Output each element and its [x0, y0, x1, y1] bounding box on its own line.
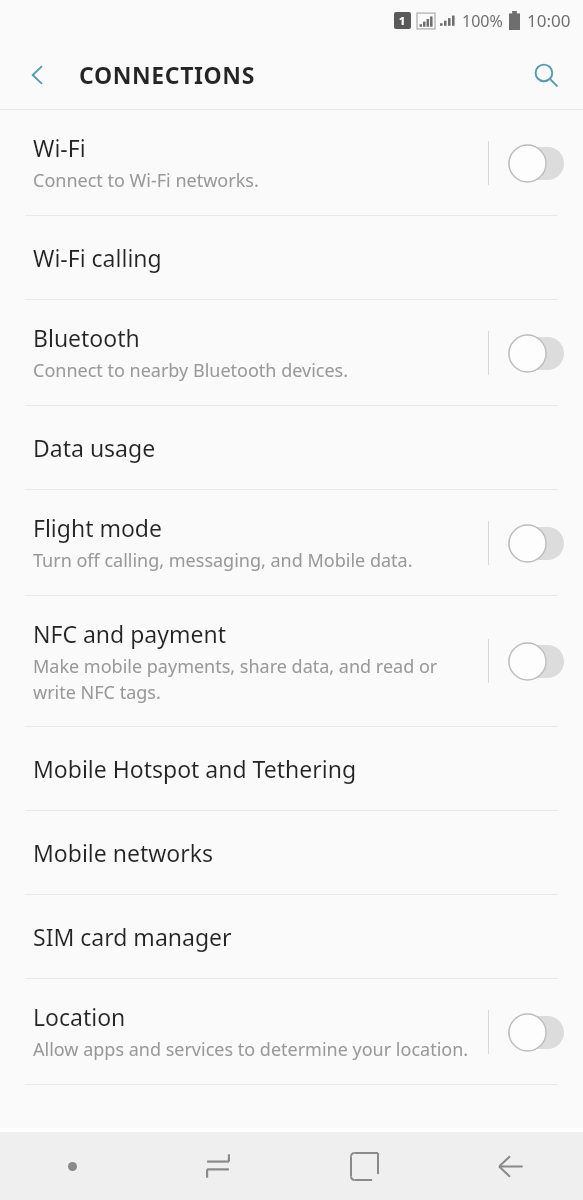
button[interactable]: Toggle — [508, 333, 564, 373]
staticText: Flight mode — [33, 512, 162, 543]
button[interactable]: Home — [291, 1132, 437, 1200]
staticText: Allow apps and services to determine you… — [33, 1037, 469, 1062]
button[interactable]: Search — [522, 51, 570, 99]
staticText: SIM card manager — [33, 921, 232, 952]
staticText: 10:00 — [527, 9, 571, 32]
staticText: Data usage — [33, 432, 156, 463]
button[interactable]: Toggle — [508, 1012, 564, 1052]
button[interactable]: Back — [14, 51, 62, 99]
button[interactable]: Mobile Hotspot and Tethering — [0, 727, 583, 810]
staticText: Mobile Hotspot and Tethering — [33, 753, 357, 784]
staticText: NFC and payment — [33, 618, 226, 649]
staticText: Mobile networks — [33, 837, 214, 868]
button[interactable]: Wi-Fi calling — [0, 216, 583, 299]
button[interactable]: Toggle — [508, 641, 564, 681]
staticText: Wi-Fi calling — [33, 242, 162, 273]
button[interactable]: Location — [0, 979, 583, 1084]
button[interactable]: Data usage — [0, 406, 583, 489]
staticText: Turn off calling, messaging, and Mobile … — [33, 548, 413, 573]
button[interactable]: Toggle — [508, 523, 564, 563]
button[interactable]: Wi-Fi — [0, 110, 583, 215]
staticText: Bluetooth — [33, 322, 140, 353]
staticText: Location — [33, 1001, 126, 1032]
staticText: CONNECTIONS — [79, 59, 255, 90]
button[interactable]: Mobile networks — [0, 811, 583, 894]
button[interactable]: SIM card manager — [0, 895, 583, 978]
staticText: Wi-Fi — [33, 132, 86, 163]
staticText: 1 — [399, 13, 406, 28]
button[interactable]: Recents — [145, 1132, 291, 1200]
button[interactable]: Bluetooth — [0, 300, 583, 405]
button[interactable]: Back — [437, 1132, 583, 1200]
button[interactable]: Flight mode — [0, 490, 583, 595]
button[interactable]: Toggle — [508, 143, 564, 183]
staticText: 100% — [462, 10, 503, 32]
button[interactable]: NFC and payment — [0, 596, 583, 726]
staticText: Make mobile payments, share data, and re… — [33, 654, 480, 704]
staticText: Connect to nearby Bluetooth devices. — [33, 358, 349, 383]
staticText: Connect to Wi-Fi networks. — [33, 168, 259, 193]
button[interactable]: Indicator — [0, 1132, 145, 1200]
